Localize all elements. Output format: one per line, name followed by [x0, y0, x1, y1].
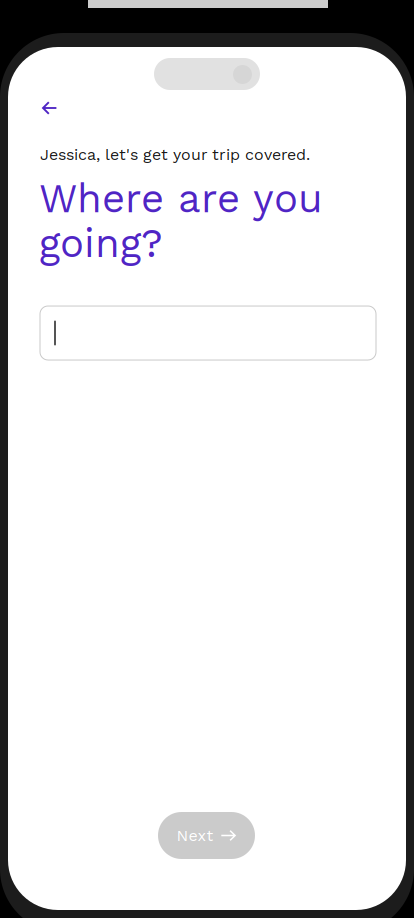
button[interactable]: Back — [42, 92, 86, 124]
staticText: Where are you going? — [39, 175, 323, 267]
staticText: Jessica, let's get your trip covered. — [40, 145, 310, 164]
staticText: Next — [176, 826, 213, 845]
button[interactable]: Next — [158, 812, 255, 859]
